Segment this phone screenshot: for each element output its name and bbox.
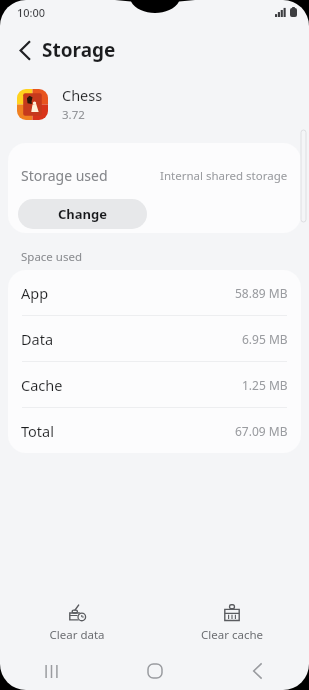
staticText: Storage xyxy=(42,37,116,63)
staticText: 3.72 xyxy=(62,107,85,123)
staticText: 6.95 MB xyxy=(242,331,288,347)
button[interactable]: Back xyxy=(8,33,42,67)
staticText: Data xyxy=(21,329,54,349)
staticText: Internal shared storage xyxy=(160,168,288,184)
button[interactable]: Home xyxy=(103,652,206,690)
staticText: Cache xyxy=(21,375,63,395)
button[interactable]: Back xyxy=(206,652,309,690)
staticText: Chess xyxy=(62,85,103,105)
staticText: Clear cache xyxy=(201,627,263,643)
staticText: 1.25 MB xyxy=(242,377,288,393)
button[interactable]: Clear data xyxy=(33,600,121,647)
button[interactable]: App xyxy=(8,270,301,316)
staticText: Storage used xyxy=(21,166,108,185)
button[interactable]: Recent apps xyxy=(0,652,103,690)
button[interactable]: Clear cache xyxy=(185,600,279,647)
staticText: Clear data xyxy=(49,627,105,643)
staticText: Change xyxy=(58,205,108,223)
button[interactable]: Change xyxy=(18,199,147,229)
button[interactable]: Cache xyxy=(8,362,301,408)
button[interactable]: Data xyxy=(8,316,301,362)
staticText: Total xyxy=(21,421,54,441)
button[interactable]: Chess xyxy=(0,76,309,132)
staticText: 10:00 xyxy=(17,5,46,20)
button[interactable]: Total xyxy=(8,408,301,453)
staticText: 67.09 MB xyxy=(235,423,288,439)
staticText: 58.89 MB xyxy=(235,285,288,301)
staticText: Space used xyxy=(21,249,83,265)
staticText: App xyxy=(21,283,49,303)
